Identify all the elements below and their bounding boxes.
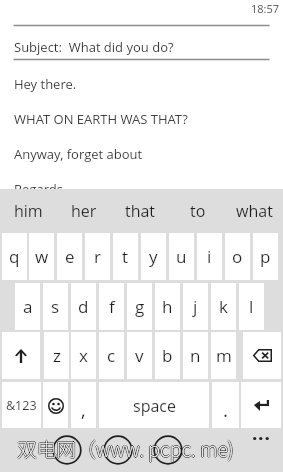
button[interactable]: w (29, 233, 54, 280)
button[interactable]: &123 (2, 382, 41, 429)
button[interactable]: a (15, 283, 40, 330)
button[interactable]: d (71, 283, 96, 330)
staticText: x (79, 344, 88, 367)
button[interactable]: Close (153, 435, 183, 465)
button[interactable]: u (169, 233, 194, 280)
staticText: q (9, 245, 20, 268)
staticText: him (14, 200, 43, 222)
staticText: z (53, 344, 61, 367)
button[interactable]: f (99, 283, 124, 330)
button[interactable]: him (0, 189, 56, 233)
button[interactable]: o (225, 233, 250, 280)
button[interactable]: q (2, 233, 27, 280)
staticText: l (249, 295, 254, 318)
staticText: t (122, 245, 129, 268)
staticText: o (232, 245, 243, 268)
button[interactable]: what (226, 189, 283, 233)
staticText: r (94, 245, 101, 268)
staticText: a (23, 295, 33, 318)
staticText: WHAT ON EARTH WAS THAT? (14, 110, 188, 128)
staticText: y (149, 245, 158, 268)
button[interactable]: Emoji (43, 382, 68, 429)
staticText: e (65, 245, 75, 268)
staticText: f (109, 295, 115, 318)
button[interactable]: . (212, 382, 239, 429)
staticText: i (207, 245, 212, 268)
button[interactable]: z (44, 332, 69, 379)
button[interactable]: Enter (241, 382, 281, 429)
staticText: 双电网（www. pcpc. me) (17, 435, 234, 464)
button[interactable]: Shift (2, 332, 40, 379)
button[interactable]: More options (248, 430, 276, 447)
staticText: her (71, 200, 97, 222)
button[interactable]: e (57, 233, 82, 280)
staticText: that (125, 200, 156, 222)
staticText: &123 (6, 397, 37, 414)
staticText: p (260, 245, 271, 268)
staticText: Anyway, forget about (14, 145, 143, 163)
staticText: space (133, 395, 176, 417)
button[interactable]: to (169, 189, 226, 233)
staticText: v (135, 344, 144, 367)
staticText: u (176, 245, 187, 268)
button[interactable]: her (56, 189, 112, 233)
staticText: k (219, 295, 228, 318)
button[interactable]: g (127, 283, 152, 330)
button[interactable]: Send (103, 435, 133, 465)
staticText: 18:57 (251, 1, 280, 16)
staticText: n (190, 344, 201, 367)
staticText: b (162, 344, 173, 367)
staticText: d (78, 295, 89, 318)
staticText: j (193, 295, 198, 318)
staticText: Subject: What did you do? (14, 38, 174, 56)
staticText: m (216, 344, 232, 367)
button[interactable]: space (99, 382, 209, 429)
staticText: Regards (14, 180, 63, 198)
button[interactable]: y (141, 233, 166, 280)
button[interactable]: Attach (52, 435, 82, 465)
button[interactable]: r (85, 233, 110, 280)
staticText: s (51, 295, 60, 318)
staticText: Hey there. (14, 75, 77, 93)
button[interactable]: b (155, 332, 180, 379)
staticText: h (162, 295, 173, 318)
button[interactable]: l (239, 283, 264, 330)
staticText: w (35, 245, 49, 268)
button[interactable]: Backspace (243, 332, 281, 379)
staticText: 双电网（www. pcpc. me) (17, 434, 234, 463)
button[interactable]: , (71, 382, 96, 429)
staticText: what (236, 200, 273, 222)
button[interactable]: h (155, 283, 180, 330)
staticText: . (223, 397, 229, 423)
staticText: to (190, 200, 206, 222)
staticText: , (81, 397, 86, 423)
button[interactable]: m (211, 332, 236, 379)
staticText: 双电网（www. pcpc. me) (17, 433, 234, 462)
button[interactable]: that (112, 189, 169, 233)
staticText: 双电网（www. pcpc. me) (18, 434, 235, 463)
button[interactable]: j (183, 283, 208, 330)
button[interactable]: p (253, 233, 278, 280)
staticText: c (107, 344, 116, 367)
button[interactable]: i (197, 233, 222, 280)
button[interactable]: c (99, 332, 124, 379)
button[interactable]: n (183, 332, 208, 379)
button[interactable]: s (43, 283, 68, 330)
staticText: 双电网（www. pcpc. me) (16, 434, 233, 463)
button[interactable]: t (113, 233, 138, 280)
button[interactable]: x (71, 332, 96, 379)
staticText: g (135, 295, 145, 318)
button[interactable]: k (211, 283, 236, 330)
button[interactable]: v (127, 332, 152, 379)
